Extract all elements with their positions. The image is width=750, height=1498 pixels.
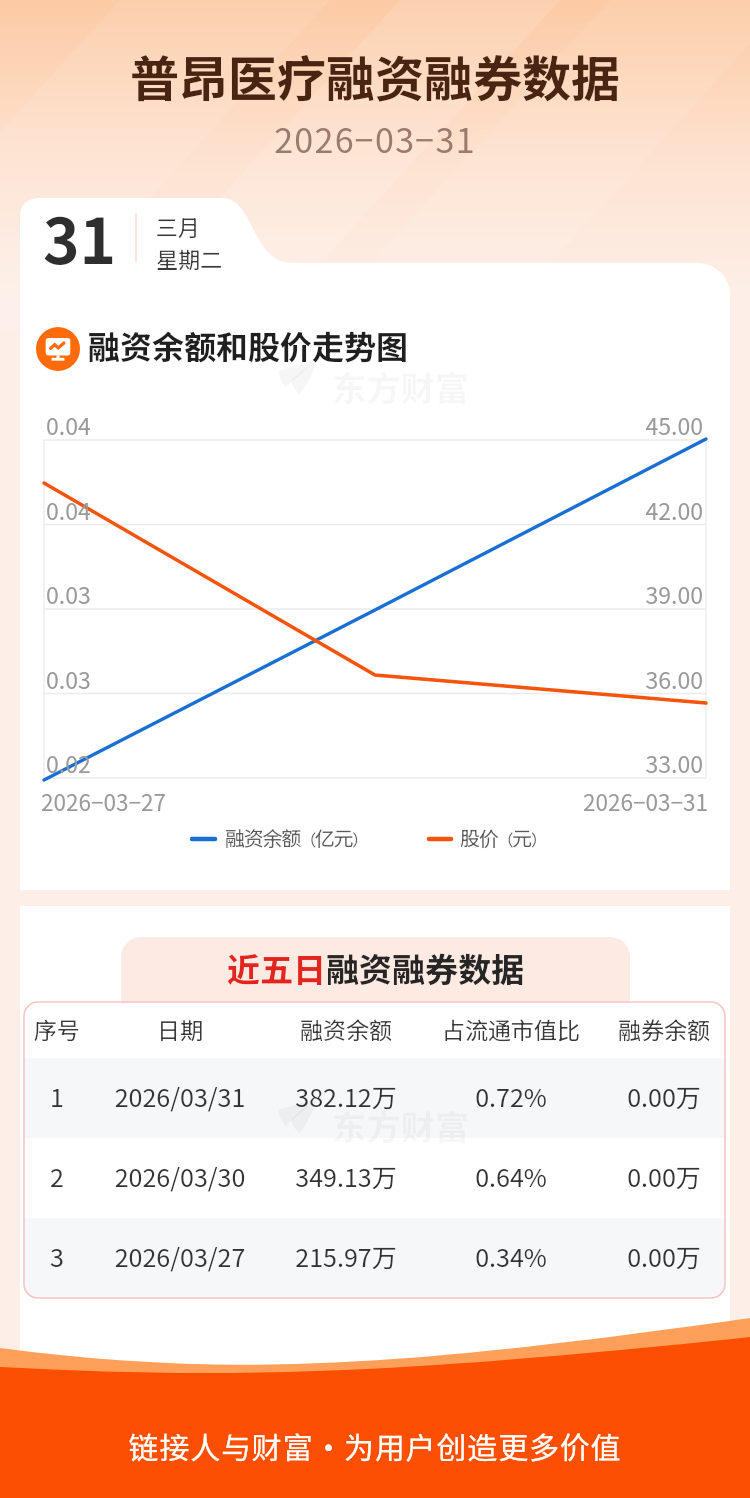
staticText: 33.00 (20, 746, 703, 779)
staticText: 42.00 (20, 493, 703, 526)
other: 走势图 (36, 327, 80, 371)
staticText: 近五日融资融券数据 (121, 944, 630, 992)
staticText: 2026/03/27 (50, 1238, 310, 1274)
staticText: 0.04 (46, 493, 91, 526)
staticText: 0.03 (46, 662, 91, 695)
staticText: 1 (0, 1078, 187, 1114)
staticText: 0.64% (381, 1158, 641, 1194)
staticText: 0.04 (46, 408, 91, 441)
staticText: 占流通市值比 (381, 1012, 641, 1045)
staticText: 三月 (156, 210, 201, 242)
staticText: 融资余额和股价走势图 (88, 322, 409, 368)
staticText: 日期 (50, 1012, 310, 1045)
staticText: 普昂医疗融资融券数据 (0, 40, 750, 111)
staticText: 融券余额 (534, 1012, 750, 1045)
staticText: 序号 (0, 1012, 187, 1045)
staticText: 融资余额（亿元） (225, 823, 367, 852)
staticText: 0.72% (381, 1078, 641, 1114)
staticText: 349.13万 (216, 1158, 476, 1194)
staticText: 3 (0, 1238, 187, 1274)
staticText: 2 (0, 1158, 187, 1194)
staticText: 45.00 (20, 408, 703, 441)
staticText: 东方财富 (332, 362, 470, 411)
staticText: 东方财富 (332, 1101, 470, 1150)
staticText: 0.00万 (534, 1078, 750, 1114)
staticText: 0.34% (381, 1238, 641, 1274)
staticText: 链接人与财富·为用户创造更多价值 (0, 1424, 750, 1467)
staticText: 382.12万 (216, 1078, 476, 1114)
button[interactable]: 走势图 (20, 263, 730, 890)
staticText: 0.02 (46, 746, 91, 779)
staticText: 融资余额 (216, 1012, 476, 1045)
staticText: 2026−03−27 (41, 785, 166, 818)
staticText: 2026/03/31 (50, 1078, 310, 1114)
staticText: 2026−03−31 (20, 785, 708, 818)
staticText: 星期二 (156, 242, 223, 274)
staticText: 39.00 (20, 577, 703, 610)
staticText: 215.97万 (216, 1238, 476, 1274)
staticText: 0.00万 (534, 1158, 750, 1194)
staticText: 2026/03/30 (50, 1158, 310, 1194)
staticText: 36.00 (20, 662, 703, 695)
staticText: 0.03 (46, 577, 91, 610)
staticText: 0.00万 (534, 1238, 750, 1274)
staticText: 股价（元） (460, 823, 546, 852)
staticText: 31 (43, 192, 117, 282)
staticText: 2026−03−31 (0, 114, 750, 163)
